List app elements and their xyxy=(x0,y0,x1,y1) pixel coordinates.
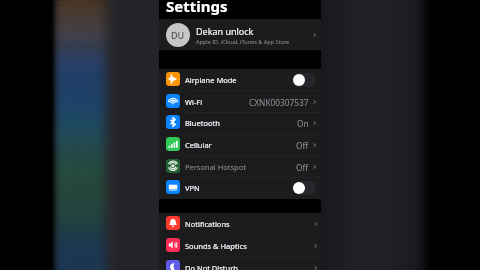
button[interactable]: Sounds & Haptics xyxy=(159,235,321,257)
button[interactable]: Bluetooth xyxy=(159,112,321,134)
staticText: Wi-Fi xyxy=(185,97,203,107)
staticText: On xyxy=(297,118,309,129)
staticText: Do Not Disturb xyxy=(185,263,238,270)
button[interactable]: Airplane Mode xyxy=(159,69,321,91)
staticText: Off xyxy=(296,162,309,173)
staticText: Settings xyxy=(166,0,228,16)
button[interactable]: Do Not Disturb xyxy=(159,257,321,270)
staticText: CXNK00307537 xyxy=(249,97,309,108)
staticText: Notifications xyxy=(185,219,230,229)
staticText: Dekan unlock xyxy=(196,25,254,37)
staticText: VPN xyxy=(185,183,200,193)
button[interactable]: Notifications xyxy=(159,213,321,235)
staticText: Apple ID, iCloud, iTunes & App Store xyxy=(196,38,290,45)
button[interactable]: Personal Hotspot xyxy=(159,156,321,178)
button[interactable]: Wi-Fi xyxy=(159,91,321,113)
staticText: Personal Hotspot xyxy=(185,162,246,172)
staticText: Airplane Mode xyxy=(185,75,237,85)
button[interactable]: Cellular xyxy=(159,134,321,156)
button[interactable]: DU xyxy=(159,19,321,50)
staticText: Sounds & Haptics xyxy=(185,241,247,251)
staticText: Cellular xyxy=(185,140,212,150)
staticText: Bluetooth xyxy=(185,118,220,128)
staticText: Off xyxy=(296,140,309,151)
button[interactable]: VPN xyxy=(159,177,321,199)
staticText: DU xyxy=(171,29,185,41)
